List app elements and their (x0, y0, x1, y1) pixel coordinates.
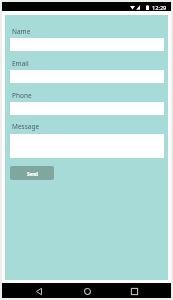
button[interactable]: Send (10, 166, 54, 180)
button[interactable]: Back (31, 283, 47, 299)
staticText: Phone (12, 91, 32, 100)
staticText: 12:29 (152, 4, 167, 12)
staticText: Message (12, 122, 40, 131)
staticText: Name (12, 27, 31, 36)
staticText: Send (27, 171, 38, 177)
staticText: Email (12, 59, 29, 68)
button[interactable]: Recent apps (126, 283, 142, 299)
button[interactable]: Home (79, 283, 95, 299)
